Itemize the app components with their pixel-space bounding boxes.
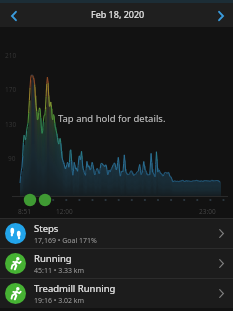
button[interactable]: Running: [0, 249, 233, 278]
button[interactable]: Next day: [208, 0, 233, 27]
staticText: 90: [8, 154, 16, 163]
staticText: 8:51: [18, 207, 31, 216]
staticText: 23:00: [199, 207, 216, 216]
staticText: 45:11 • 3.33 km: [34, 266, 85, 276]
staticText: Steps: [34, 222, 59, 235]
staticText: 19:16 • 3.02 km: [34, 296, 85, 306]
button[interactable]: Steps: [0, 219, 233, 248]
staticText: Treadmill Running: [34, 282, 116, 295]
staticText: Tap and hold for details.: [58, 112, 166, 125]
staticText: 170: [5, 85, 17, 94]
button[interactable]: Previous day: [0, 0, 27, 27]
staticText: Feb 18, 2020: [91, 8, 145, 20]
button[interactable]: Treadmill Running: [0, 279, 233, 308]
staticText: 210: [5, 51, 17, 60]
staticText: 130: [5, 120, 17, 129]
staticText: 17,169 • Goal 171%: [34, 236, 97, 246]
staticText: Running: [34, 252, 72, 265]
staticText: 12:00: [56, 207, 73, 216]
